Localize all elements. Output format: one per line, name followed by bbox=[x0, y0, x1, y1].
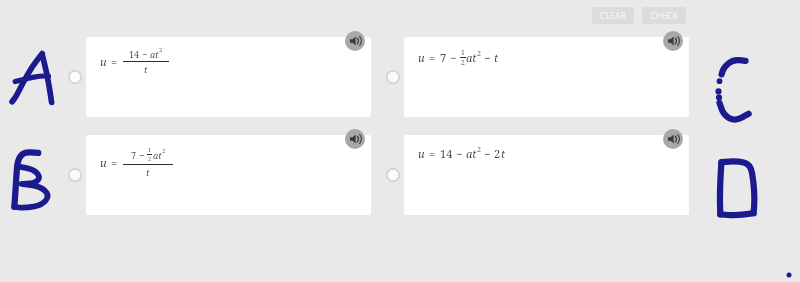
button[interactable]: Select option bbox=[66, 166, 84, 184]
button[interactable]: Play audio bbox=[663, 129, 683, 149]
staticText: CHECK bbox=[650, 10, 678, 22]
staticText: at bbox=[153, 149, 162, 161]
staticText: 2 bbox=[477, 49, 481, 59]
staticText: − bbox=[139, 149, 145, 161]
staticText: at bbox=[466, 50, 477, 65]
staticText: CLEAR bbox=[600, 10, 626, 22]
staticText: at bbox=[150, 48, 159, 60]
staticText: − bbox=[142, 48, 148, 60]
button[interactable]: CLEAR bbox=[592, 7, 634, 24]
staticText: − bbox=[484, 146, 491, 161]
button[interactable]: Play audio bbox=[345, 31, 365, 51]
staticText: t bbox=[146, 166, 150, 178]
staticText: = bbox=[429, 146, 436, 161]
staticText: 2 bbox=[461, 58, 465, 67]
staticText: − bbox=[450, 50, 457, 65]
staticText: − bbox=[456, 146, 463, 161]
button[interactable]: Select option bbox=[384, 166, 402, 184]
staticText: u bbox=[100, 54, 107, 69]
button[interactable]: u bbox=[86, 37, 371, 117]
staticText: 1 bbox=[148, 146, 152, 154]
staticText: t bbox=[501, 146, 506, 161]
button[interactable]: CHECK bbox=[642, 7, 686, 24]
staticText: 2 bbox=[162, 147, 166, 155]
button[interactable]: Select option bbox=[384, 68, 402, 86]
staticText: 2 bbox=[148, 155, 152, 163]
button[interactable]: u bbox=[404, 135, 689, 215]
button[interactable]: u bbox=[404, 37, 689, 117]
staticText: 14 bbox=[440, 146, 453, 161]
staticText: u bbox=[418, 50, 425, 65]
staticText: 1 bbox=[461, 48, 465, 57]
staticText: 2 bbox=[159, 46, 163, 54]
staticText: t bbox=[494, 50, 499, 65]
button[interactable]: u bbox=[86, 135, 371, 215]
staticText: 2 bbox=[477, 145, 481, 155]
staticText: at bbox=[466, 146, 477, 161]
staticText: − bbox=[484, 50, 491, 65]
staticText: 7 bbox=[440, 50, 447, 65]
staticText: = bbox=[111, 155, 118, 170]
button[interactable]: Select option bbox=[66, 68, 84, 86]
staticText: 14 bbox=[129, 48, 140, 60]
staticText: t bbox=[144, 63, 148, 75]
staticText: u bbox=[100, 155, 107, 170]
staticText: 2 bbox=[494, 146, 501, 161]
staticText: u bbox=[418, 146, 425, 161]
staticText: 7 bbox=[131, 149, 137, 161]
button[interactable]: Play audio bbox=[663, 31, 683, 51]
button[interactable]: Play audio bbox=[345, 129, 365, 149]
staticText: = bbox=[111, 54, 118, 69]
staticText: = bbox=[429, 50, 436, 65]
